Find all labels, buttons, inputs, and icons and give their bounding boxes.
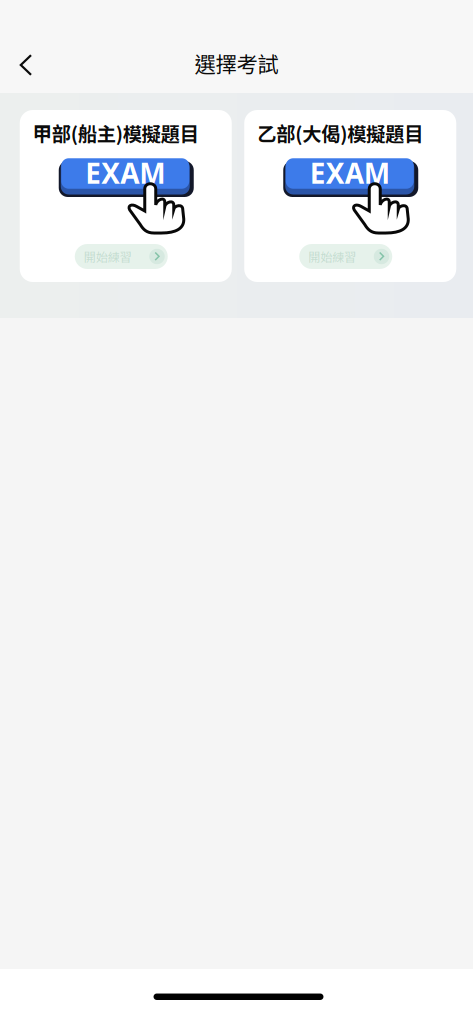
- staticText: 選擇考試: [194, 48, 278, 78]
- staticText: EXAM: [310, 154, 390, 192]
- staticText: 甲部(船主)模擬題目: [33, 119, 199, 147]
- staticText: 開始練習: [84, 248, 132, 265]
- staticText: 開始練習: [308, 248, 356, 265]
- button[interactable]: 甲部(船主)模擬題目: [20, 110, 232, 282]
- button[interactable]: 乙部(大偈)模擬題目: [244, 110, 456, 282]
- button[interactable]: Back: [4, 41, 48, 85]
- staticText: EXAM: [85, 154, 165, 192]
- staticText: 乙部(大偈)模擬題目: [257, 119, 423, 147]
